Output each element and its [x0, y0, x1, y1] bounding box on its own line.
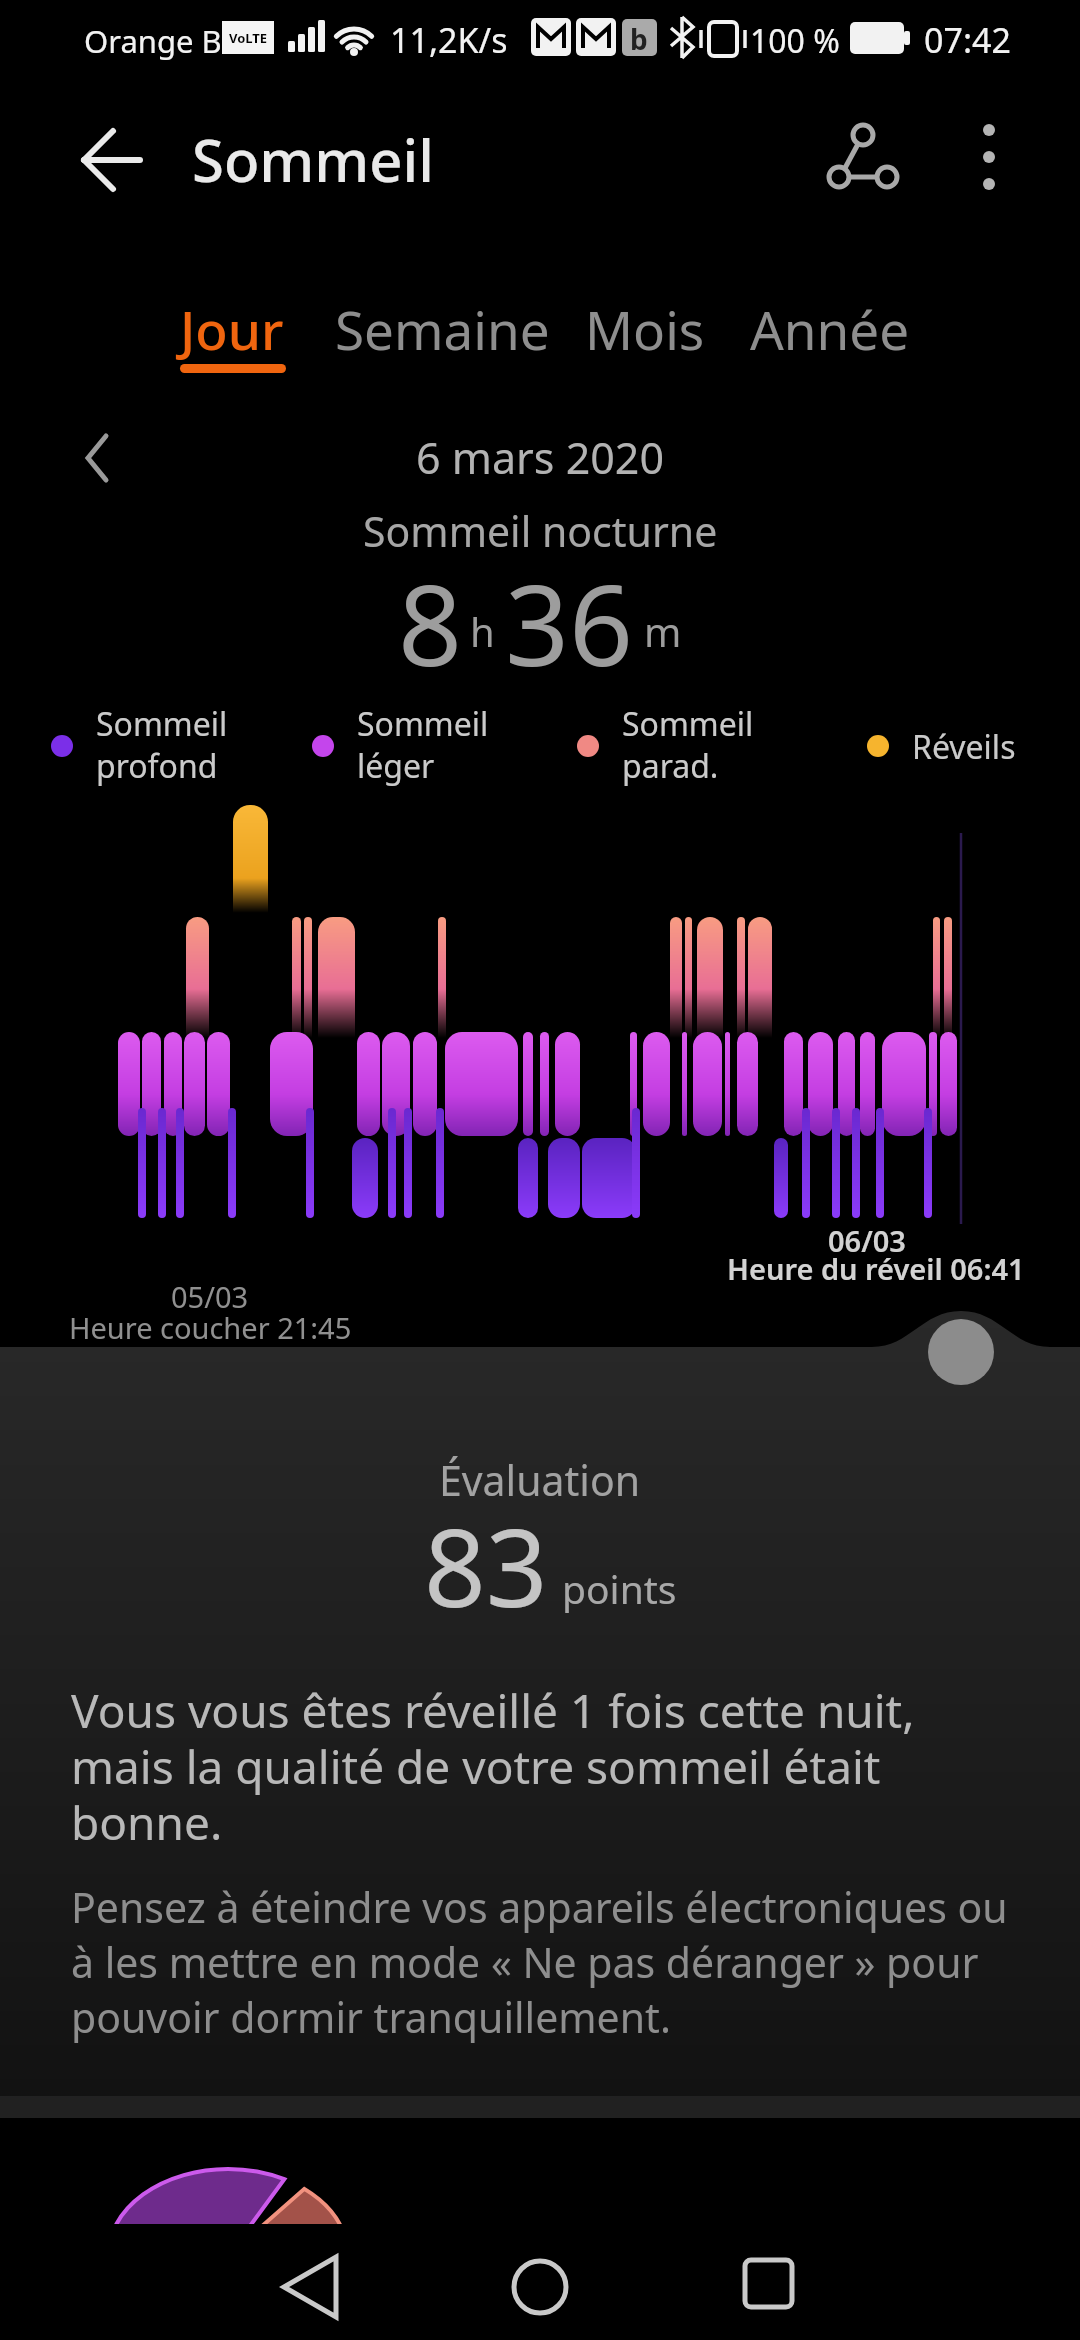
staticText: Sommeil nocturne: [363, 503, 718, 559]
staticText: Jour: [180, 293, 284, 365]
staticText: 05/03: [171, 1277, 249, 1316]
staticText: 100 %: [750, 19, 840, 63]
button[interactable]: Mois: [585, 293, 705, 365]
staticText: Évaluation: [439, 1452, 641, 1508]
button[interactable]: [950, 110, 1030, 190]
staticText: Heure coucher 21:45: [69, 1308, 352, 1347]
staticText: 6 mars 2020: [416, 428, 665, 487]
staticText: Année: [750, 293, 910, 365]
staticText: m: [644, 604, 682, 658]
staticText: Réveils: [912, 725, 1016, 769]
button[interactable]: [458, 2230, 623, 2340]
staticText: Sommeil parad.: [622, 702, 754, 787]
button[interactable]: [928, 1319, 994, 1385]
staticText: Pensez à éteindre vos appareils électron…: [71, 1879, 1008, 2045]
staticText: 36: [505, 546, 634, 699]
button[interactable]: [64, 428, 128, 492]
staticText: Sommeil léger: [357, 702, 489, 787]
staticText: 07:42: [924, 17, 1011, 63]
staticText: b: [630, 20, 648, 58]
staticText: Sommeil profond: [96, 702, 228, 787]
staticText: 06/03: [828, 1221, 906, 1260]
button[interactable]: [52, 112, 148, 208]
staticText: Semaine: [335, 293, 550, 365]
staticText: h: [470, 604, 495, 658]
staticText: VoLTE: [229, 29, 268, 47]
staticText: Heure du réveil 06:41: [727, 1249, 1025, 1288]
staticText: 11,2K/s: [390, 17, 508, 63]
button[interactable]: [230, 2230, 395, 2340]
staticText: Mois: [585, 293, 705, 365]
staticText: Sommeil: [192, 120, 434, 199]
button[interactable]: Jour: [180, 293, 284, 365]
staticText: Orange B: [84, 20, 222, 62]
staticText: 83: [424, 1492, 548, 1639]
staticText: Vous vous êtes réveillé 1 fois cette nui…: [71, 1679, 915, 1853]
staticText: 8: [398, 546, 463, 699]
button[interactable]: [810, 110, 910, 210]
button[interactable]: Semaine: [335, 293, 550, 365]
button[interactable]: [688, 2230, 853, 2340]
staticText: points: [562, 1562, 677, 1615]
button[interactable]: Année: [750, 293, 910, 365]
